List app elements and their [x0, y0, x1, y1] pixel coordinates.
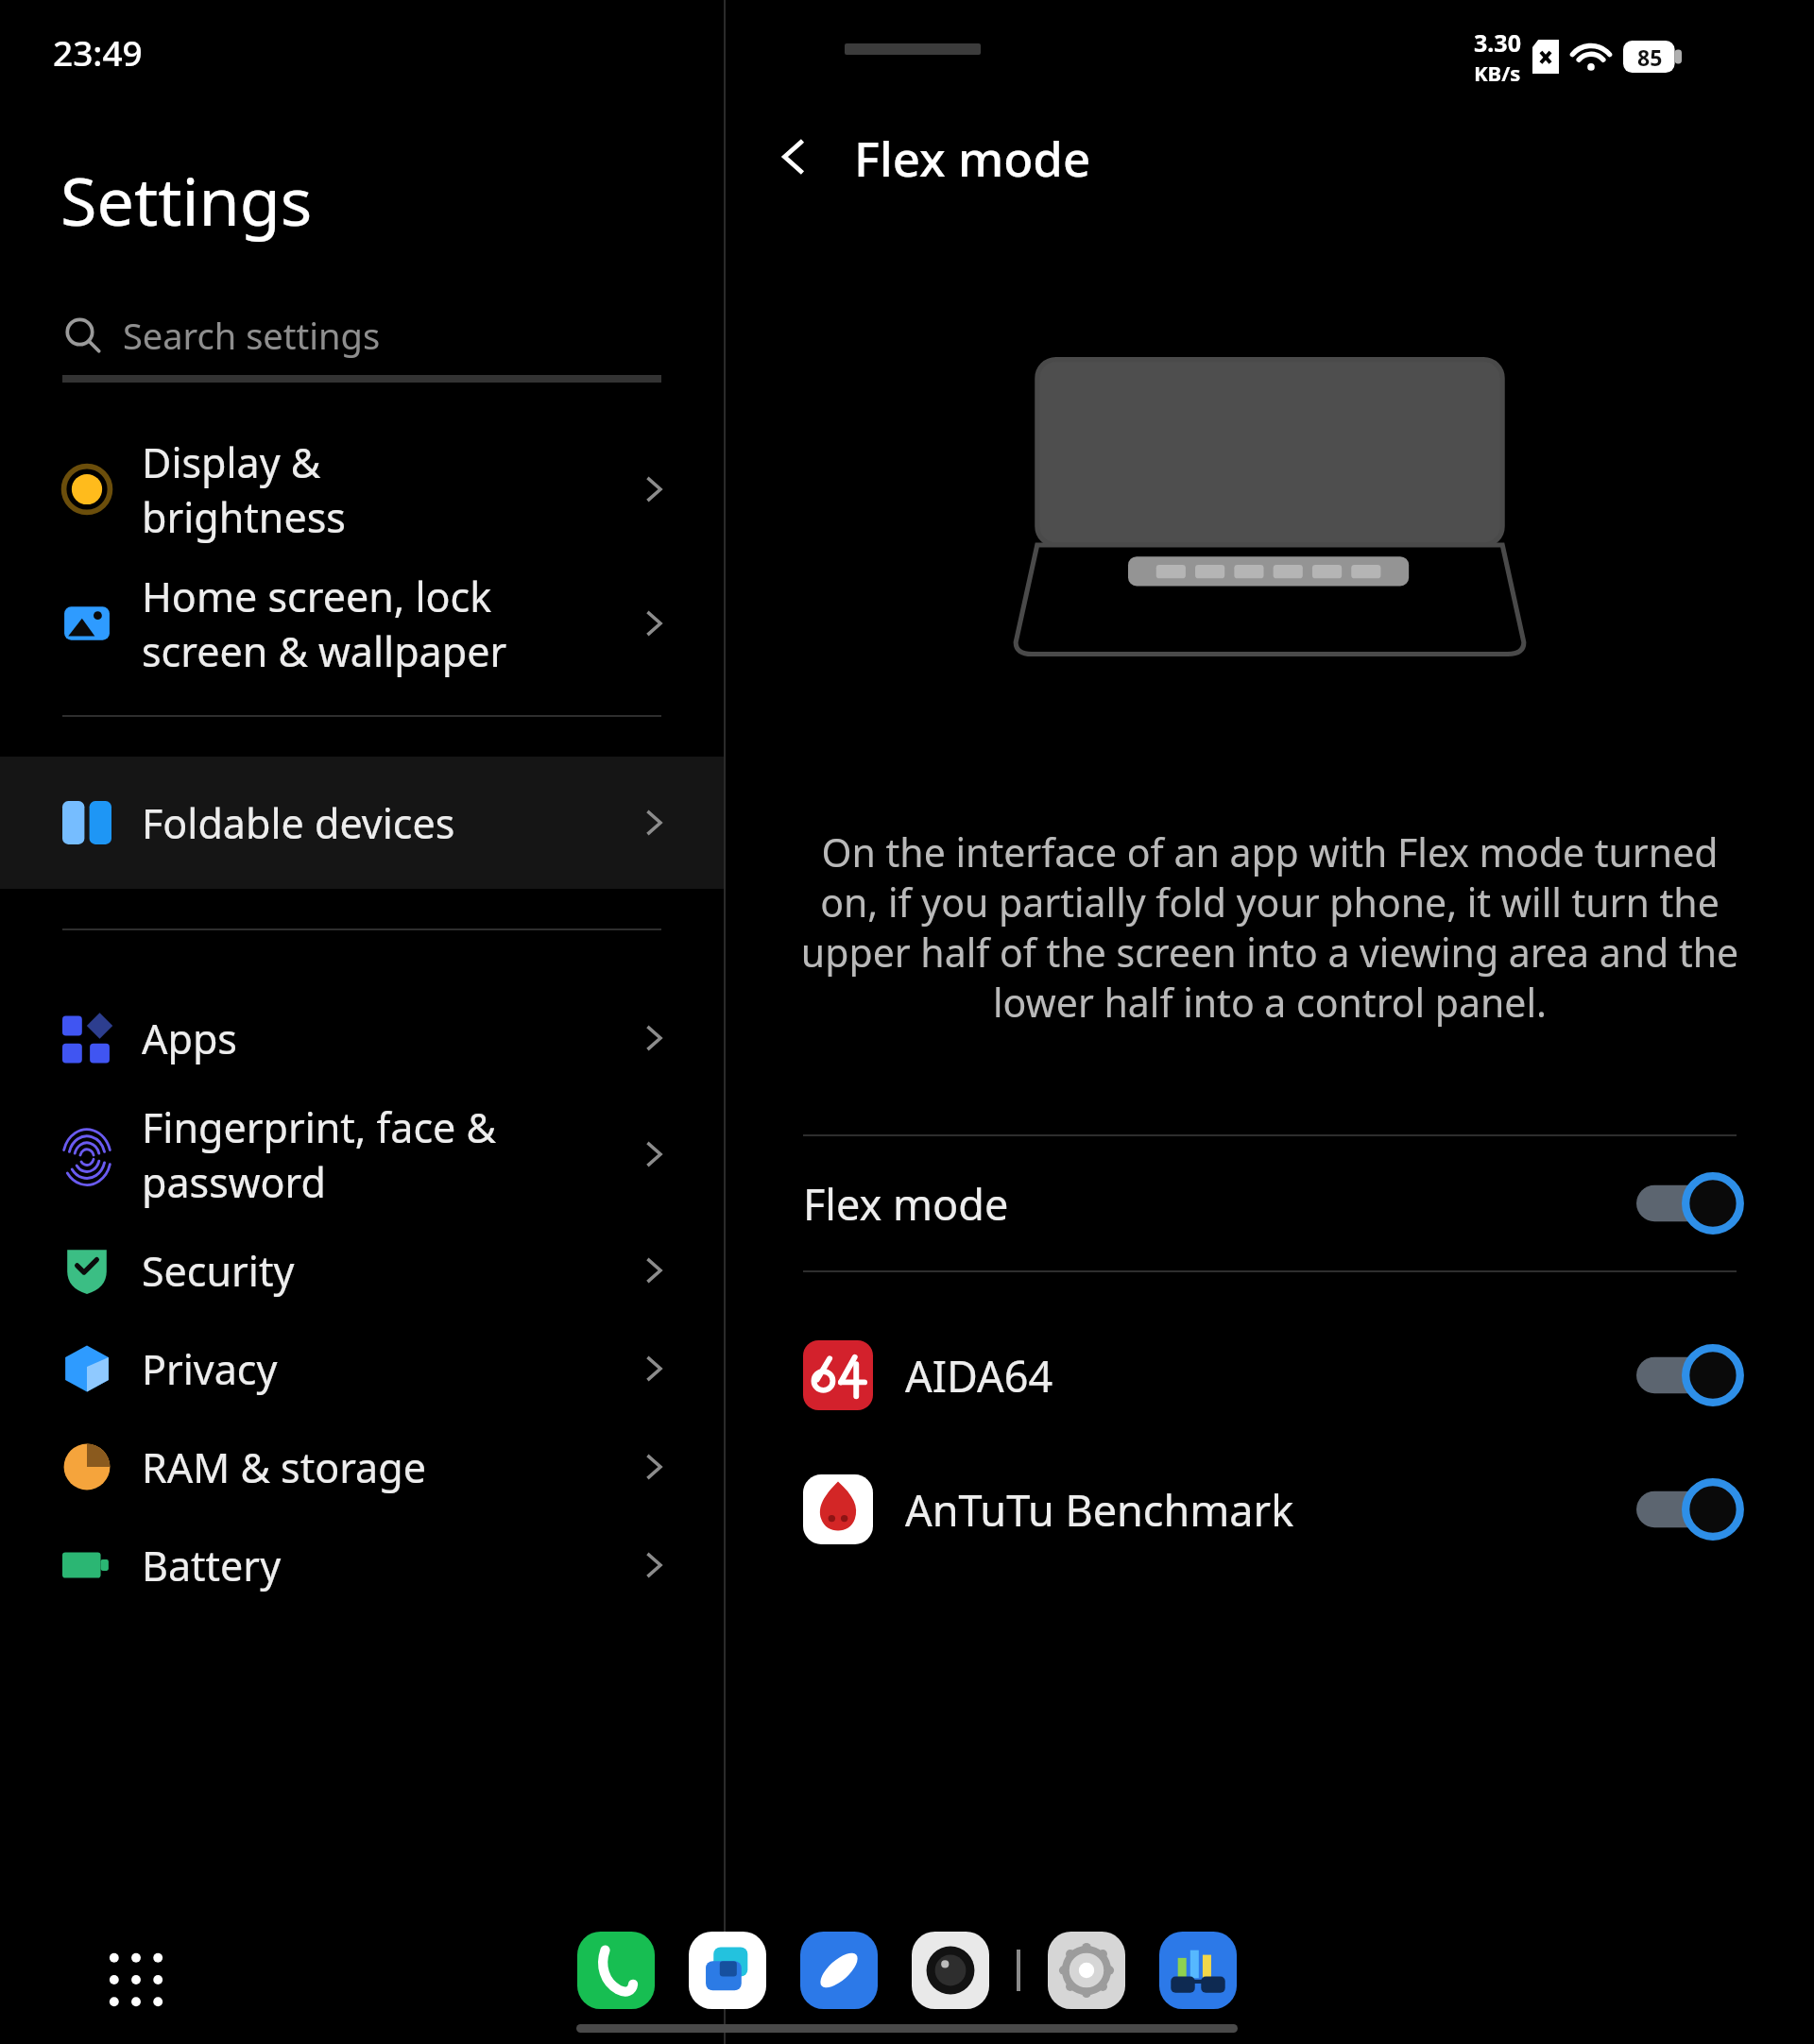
staticText: 85 [1637, 43, 1663, 72]
button[interactable]: RAM & storage [0, 1418, 724, 1516]
button[interactable]: Settings [1045, 1929, 1128, 2012]
staticText: 23:49 [53, 28, 143, 76]
button[interactable]: Messages [686, 1929, 769, 2012]
button[interactable]: Battery [0, 1516, 724, 1614]
staticText: Security [142, 1243, 633, 1299]
staticText: Settings [60, 155, 313, 245]
staticText: Battery [142, 1538, 633, 1593]
staticText: Display & brightness [142, 434, 633, 544]
staticText: RAM & storage [142, 1439, 633, 1495]
staticText: Flex mode [803, 1175, 1636, 1233]
button[interactable]: Browser [797, 1929, 881, 2012]
staticText: AnTuTu Benchmark [905, 1481, 1636, 1539]
staticText: Fingerprint, face & password [142, 1099, 633, 1209]
button[interactable]: Foldable devices [0, 757, 724, 889]
button[interactable]: Home screen, lock screen & wallpaper [0, 556, 724, 690]
button[interactable]: Display & brightness [0, 422, 724, 556]
button[interactable]: Stats [1156, 1929, 1240, 2012]
button[interactable]: App drawer [100, 1944, 172, 2016]
staticText: Foldable devices [142, 795, 633, 851]
button[interactable]: Privacy [0, 1320, 724, 1418]
button[interactable]: Flex mode [726, 1136, 1814, 1270]
staticText: AIDA64 [905, 1347, 1636, 1405]
button[interactable]: Fingerprint, face & password [0, 1087, 724, 1221]
staticText: 3.30 [1474, 26, 1521, 59]
staticText: Apps [142, 1011, 633, 1066]
staticText: Flex mode [854, 125, 1091, 190]
button[interactable]: Search settings [62, 299, 661, 371]
staticText: Search settings [123, 311, 381, 360]
button[interactable]: Apps [0, 989, 724, 1087]
button[interactable]: Camera [909, 1929, 992, 2012]
button[interactable]: Back [752, 115, 835, 198]
button[interactable]: Phone [574, 1929, 658, 2012]
staticText: Privacy [142, 1341, 633, 1397]
button[interactable]: Security [0, 1221, 724, 1320]
staticText: Home screen, lock screen & wallpaper [142, 569, 633, 678]
button[interactable]: AnTuTu Benchmark [726, 1442, 1814, 1576]
staticText: On the interface of an app with Flex mod… [799, 826, 1740, 1029]
button[interactable]: AIDA64 [726, 1308, 1814, 1442]
staticText: KB/s [1474, 59, 1521, 87]
